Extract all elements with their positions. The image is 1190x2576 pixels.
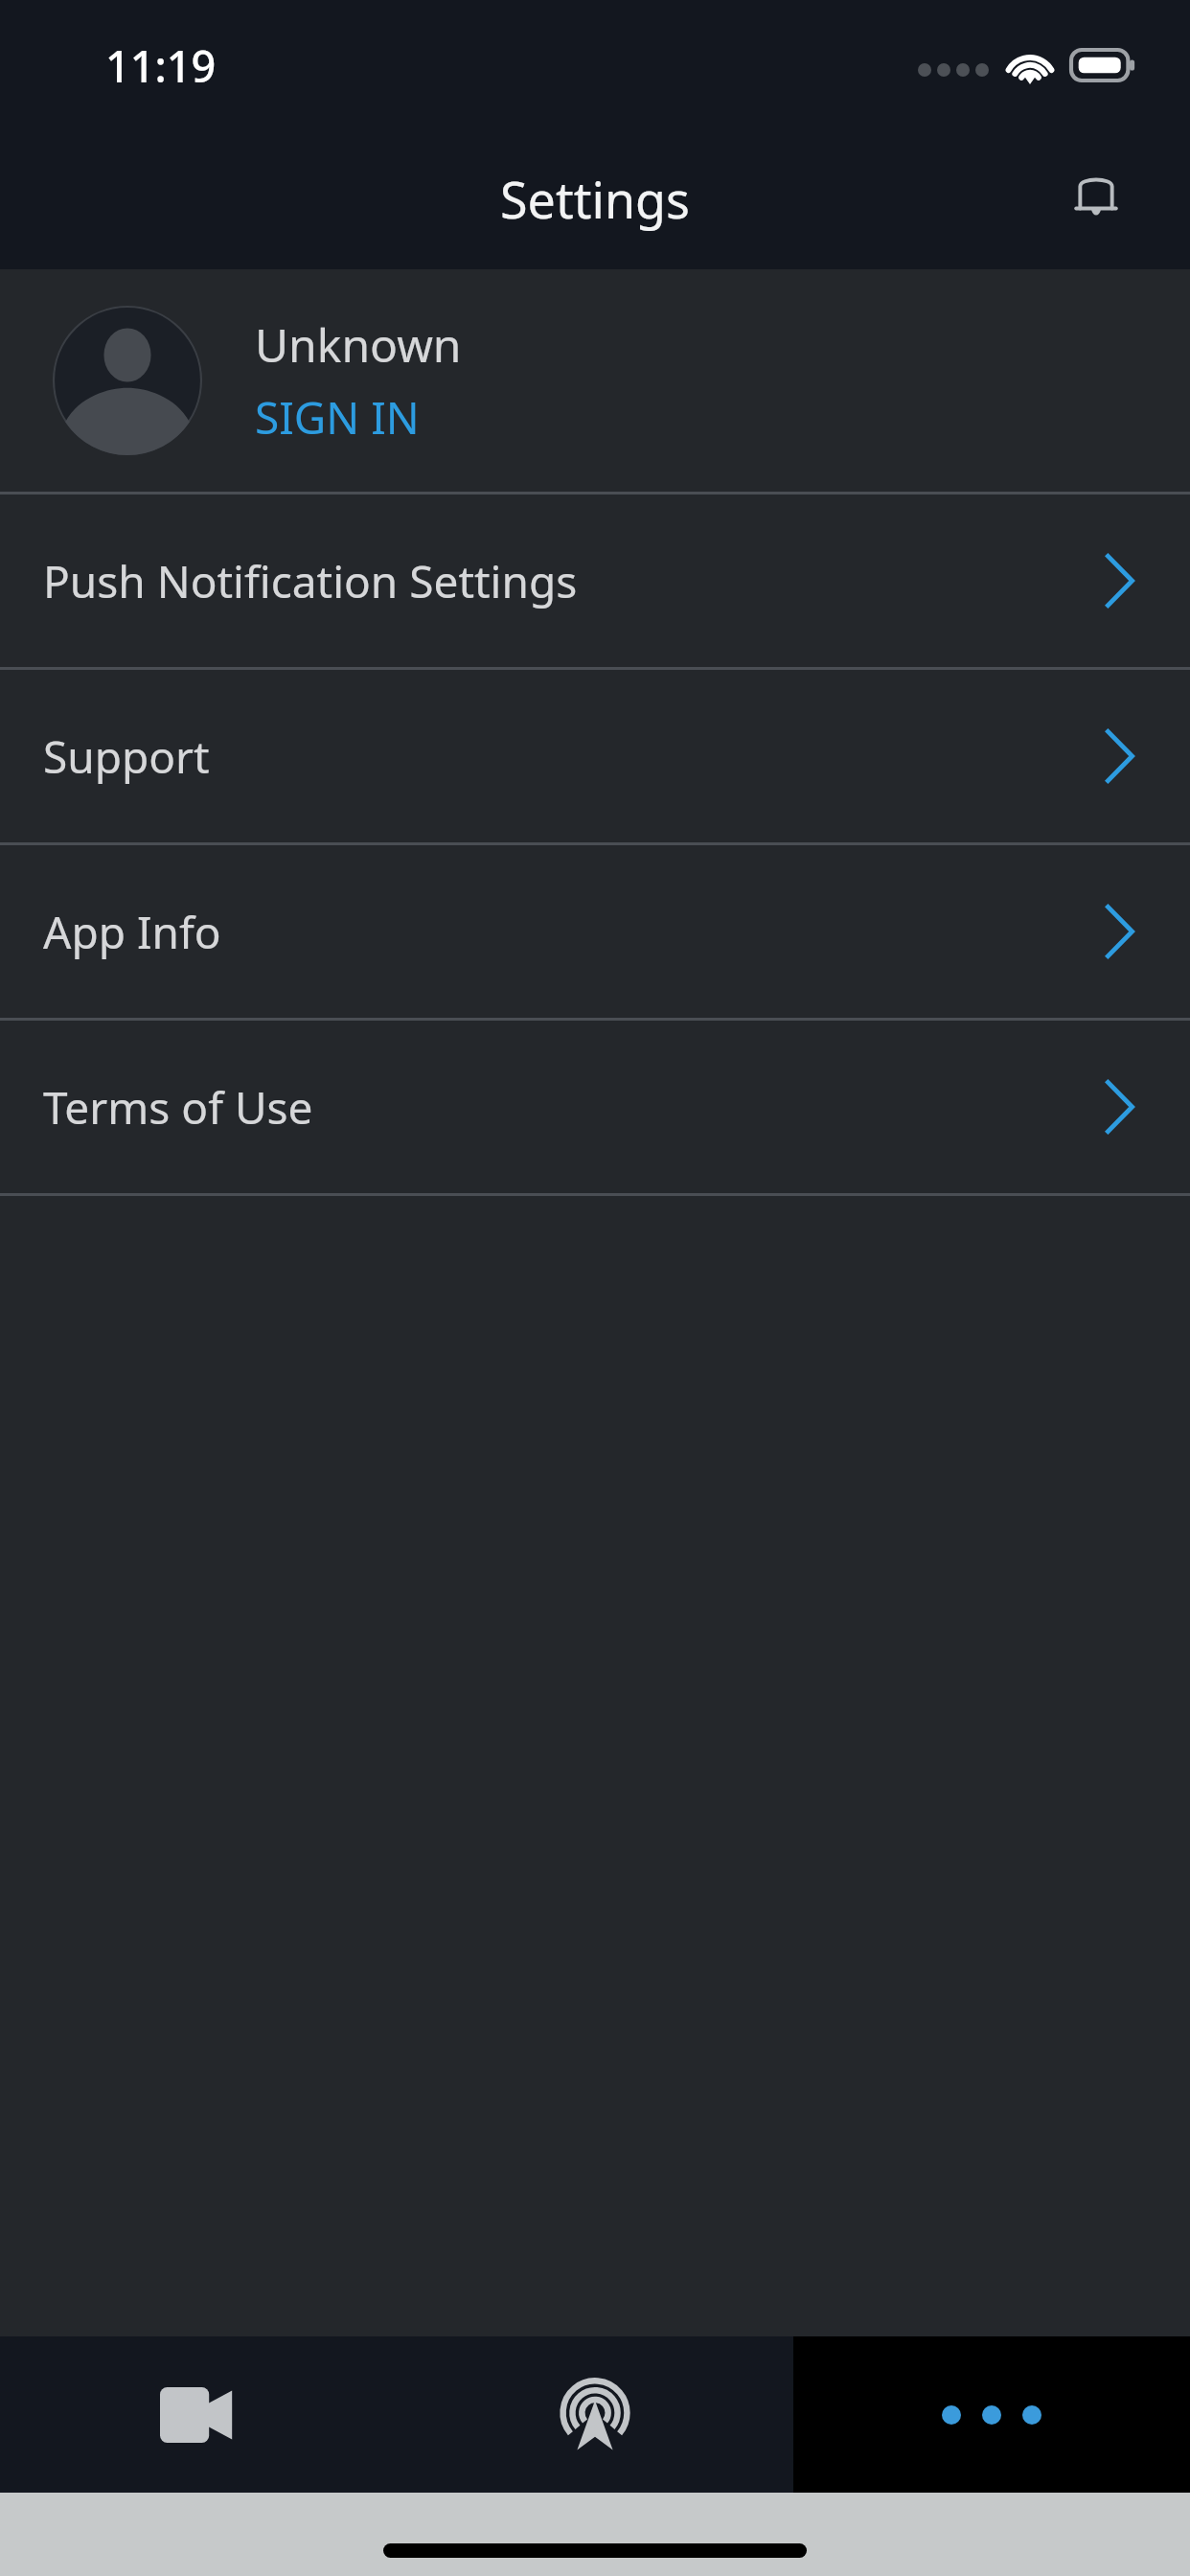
button[interactable]: Support: [0, 670, 1190, 842]
button[interactable]: Notifications: [1050, 151, 1142, 243]
button[interactable]: App Info: [0, 845, 1190, 1018]
button[interactable]: Video: [0, 2336, 397, 2493]
staticText: Terms of Use: [43, 1077, 313, 1138]
staticText: Settings: [500, 165, 690, 233]
staticText: Unknown: [255, 313, 462, 376]
staticText: App Info: [43, 902, 221, 962]
staticText: Push Notification Settings: [43, 551, 578, 611]
button[interactable]: SIGN IN: [255, 387, 420, 448]
button[interactable]: More: [793, 2336, 1190, 2493]
button[interactable]: Unknown: [0, 269, 1190, 492]
staticText: 11:19: [105, 36, 217, 95]
button[interactable]: Push Notification Settings: [0, 494, 1190, 667]
staticText: Support: [43, 726, 210, 787]
button[interactable]: Broadcast: [397, 2336, 793, 2493]
button[interactable]: Terms of Use: [0, 1021, 1190, 1193]
